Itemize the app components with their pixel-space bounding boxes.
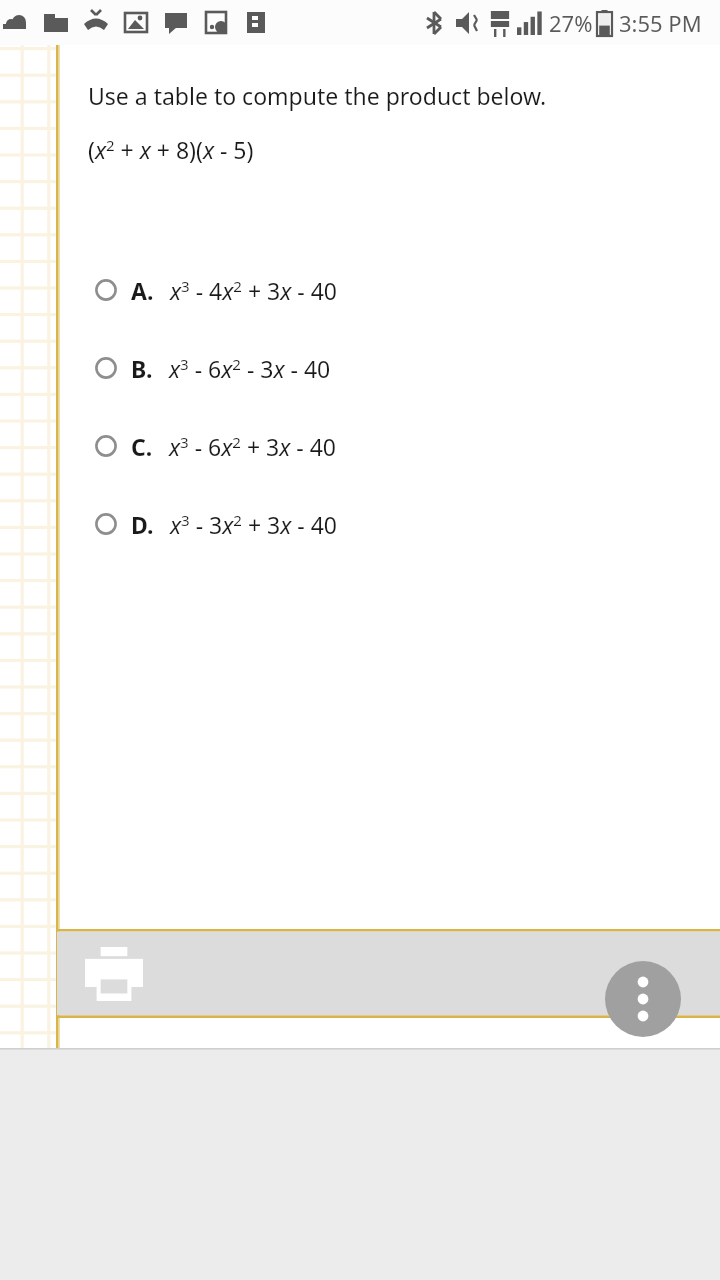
button[interactable]: D. <box>88 501 720 547</box>
staticText: 3:55 PM <box>619 8 702 38</box>
staticText: (x2 + x + 8)(x - 5) <box>88 134 254 165</box>
staticText: C. <box>131 431 153 462</box>
staticText: x3 - 6x2 - 3x - 40 <box>169 353 331 384</box>
staticText: B. <box>131 353 153 384</box>
staticText: x3 - 4x2 + 3x - 40 <box>170 275 337 306</box>
button[interactable]: Print <box>85 947 143 1001</box>
button[interactable]: C. <box>88 423 720 469</box>
staticText: x3 - 3x2 + 3x - 40 <box>170 509 337 540</box>
staticText: 27% <box>549 8 593 38</box>
staticText: A. <box>131 275 154 306</box>
staticText: x3 - 6x2 + 3x - 40 <box>169 431 336 462</box>
staticText: Use a table to compute the product below… <box>88 80 547 111</box>
button[interactable]: More options <box>605 961 681 1037</box>
button[interactable]: B. <box>88 345 720 391</box>
button[interactable]: A. <box>88 267 720 313</box>
staticText: D. <box>131 509 154 540</box>
